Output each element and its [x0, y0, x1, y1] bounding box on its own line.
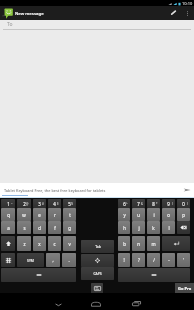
button[interactable]: u — [132, 208, 145, 221]
button[interactable]: SYM — [17, 253, 44, 267]
staticText: CAPS — [93, 271, 102, 276]
button[interactable]: ? — [132, 253, 145, 267]
button[interactable]: h — [118, 221, 130, 234]
button[interactable]: ! — [118, 253, 130, 267]
button[interactable]: b — [118, 236, 130, 251]
staticText: b — [123, 241, 126, 247]
button[interactable]: s — [17, 221, 31, 234]
staticText: d — [38, 225, 41, 231]
staticText: Tablet Keyboard Free, the best free keyb… — [4, 188, 106, 193]
staticText: Go Pro — [178, 286, 192, 291]
button[interactable]: t — [63, 208, 76, 221]
button[interactable]: q — [1, 208, 15, 221]
staticText: g — [68, 225, 71, 231]
button[interactable]: i — [147, 208, 160, 221]
button[interactable]: Space — [1, 268, 76, 282]
staticText: e — [38, 212, 41, 218]
button[interactable]: 6 — [118, 199, 130, 208]
staticText: u — [137, 212, 140, 218]
staticText: m — [151, 241, 156, 247]
staticText: i — [153, 212, 155, 218]
staticText: # — [42, 202, 44, 206]
button[interactable]: r — [48, 208, 61, 221]
button[interactable]: 2 — [17, 199, 31, 208]
button[interactable]: 9 — [162, 199, 175, 208]
staticText: $ — [57, 202, 59, 206]
staticText: l — [168, 225, 170, 231]
button[interactable]: Arrows — [81, 254, 114, 267]
button[interactable]: 3 — [33, 199, 46, 208]
staticText: ~ — [11, 202, 13, 206]
button[interactable]: Go Pro — [175, 283, 194, 294]
staticText: * — [156, 202, 158, 206]
button[interactable]: d — [33, 221, 46, 234]
button[interactable]: 0 — [177, 199, 190, 208]
staticText: t — [69, 212, 71, 218]
button[interactable]: e — [33, 208, 46, 221]
staticText: 0 — [182, 201, 185, 207]
button[interactable]: o — [162, 208, 175, 221]
button[interactable]: Recent apps — [124, 295, 148, 310]
staticText: h — [123, 225, 126, 231]
button[interactable]: 1 — [1, 199, 15, 208]
button[interactable]: k — [147, 221, 160, 234]
button[interactable]: 5 — [63, 199, 76, 208]
staticText: w — [22, 212, 26, 218]
staticText: & — [141, 202, 143, 206]
button[interactable]: Shift — [1, 236, 15, 251]
staticText: To — [7, 21, 13, 28]
button[interactable]: j — [132, 221, 145, 234]
button[interactable]: More options — [182, 8, 192, 18]
staticText: p — [182, 212, 185, 218]
button[interactable]: Keyboard — [91, 283, 103, 294]
button[interactable]: y — [118, 208, 130, 221]
staticText: a — [7, 225, 10, 231]
staticText: n — [137, 241, 140, 247]
staticText: . — [68, 257, 70, 263]
button[interactable]: Send — [180, 183, 194, 197]
button[interactable]: Back — [46, 295, 70, 310]
button[interactable]: p — [177, 208, 190, 221]
staticText: r — [54, 212, 56, 218]
button[interactable]: / — [147, 253, 160, 267]
button[interactable]: f — [48, 221, 61, 234]
staticText: f — [54, 225, 56, 231]
button[interactable]: CAPS — [81, 267, 114, 280]
button[interactable]: 7 — [132, 199, 145, 208]
button[interactable]: w — [17, 208, 31, 221]
staticText: 6 — [123, 201, 126, 207]
button[interactable]: l — [162, 221, 175, 234]
staticText: / — [153, 257, 155, 263]
button[interactable]: Home — [84, 295, 108, 310]
button[interactable]: 8 — [147, 199, 160, 208]
button[interactable]: g — [63, 221, 76, 234]
button[interactable]: Backspace — [177, 221, 190, 234]
button[interactable]: IME — [1, 253, 15, 267]
button[interactable]: m — [147, 236, 160, 251]
button[interactable]: , — [46, 253, 60, 267]
button[interactable]: v — [63, 236, 76, 251]
staticText: 4 — [53, 201, 56, 207]
staticText: ' — [183, 257, 184, 263]
staticText: z — [23, 241, 26, 247]
button[interactable]: a — [1, 221, 15, 234]
button[interactable]: 4 — [48, 199, 61, 208]
staticText: 7 — [137, 201, 140, 207]
staticText: New message — [15, 10, 44, 16]
button[interactable]: Tab — [81, 240, 114, 253]
button[interactable]: - — [162, 253, 175, 267]
button[interactable]: Enter — [162, 236, 190, 251]
button[interactable]: Space — [118, 268, 190, 282]
staticText: k — [152, 225, 155, 231]
button[interactable]: x — [33, 236, 46, 251]
button[interactable]: . — [62, 253, 76, 267]
button[interactable]: c — [48, 236, 61, 251]
staticText: x — [38, 241, 41, 247]
staticText: SYM — [27, 258, 34, 263]
button[interactable]: To — [0, 20, 194, 30]
button[interactable]: Attach — [166, 6, 180, 20]
button[interactable]: ' — [177, 253, 190, 267]
staticText: j — [138, 225, 140, 231]
button[interactable]: n — [132, 236, 145, 251]
button[interactable]: z — [17, 236, 31, 251]
